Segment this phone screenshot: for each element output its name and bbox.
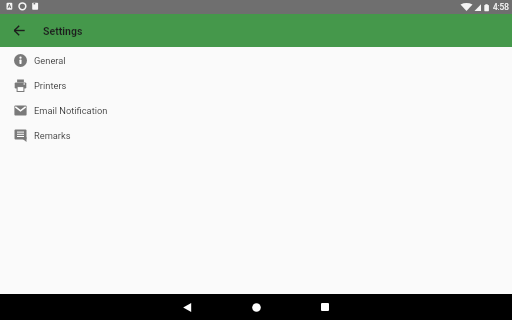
button[interactable] xyxy=(243,294,269,320)
staticText: Printers xyxy=(34,80,67,91)
button[interactable]: Printers xyxy=(0,73,512,98)
staticText: General xyxy=(34,55,66,66)
staticText: Settings xyxy=(43,25,83,37)
button[interactable] xyxy=(174,294,200,320)
button[interactable]: Remarks xyxy=(0,123,512,148)
button[interactable] xyxy=(312,294,338,320)
staticText: 4:58 xyxy=(493,2,509,12)
staticText: Remarks xyxy=(34,130,71,141)
button[interactable] xyxy=(0,14,33,47)
staticText: Email Notification xyxy=(34,105,108,116)
button[interactable]: Email Notification xyxy=(0,98,512,123)
button[interactable]: General xyxy=(0,48,512,73)
